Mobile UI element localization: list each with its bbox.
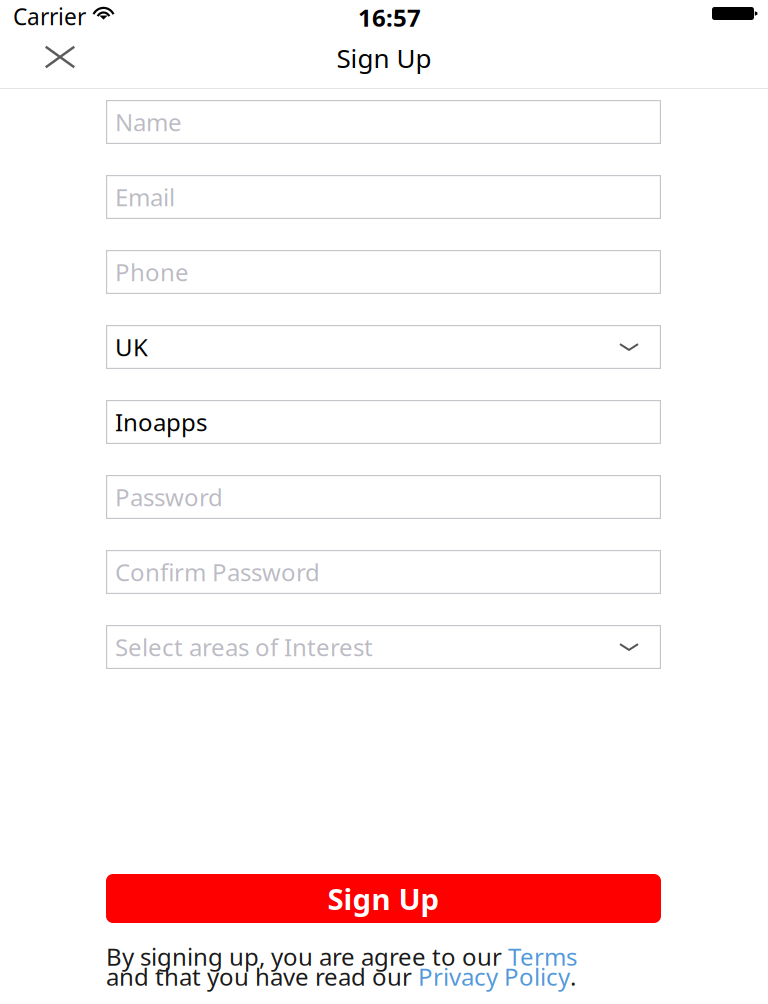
staticText: Carrier — [13, 1, 86, 32]
staticText: Password — [115, 481, 223, 513]
staticText: 16:57 — [358, 1, 421, 34]
staticText: and that you have read our — [106, 960, 418, 993]
button[interactable]: UK — [106, 325, 661, 369]
button[interactable]: Privacy Policy — [418, 960, 570, 993]
button[interactable]: Confirm Password — [106, 550, 661, 594]
staticText: Inoapps — [115, 406, 207, 438]
button[interactable]: Name — [106, 100, 661, 144]
staticText: Terms — [508, 940, 577, 973]
button[interactable]: Password — [106, 475, 661, 519]
staticText: Name — [115, 106, 182, 138]
button[interactable]: Inoapps — [106, 400, 661, 444]
button[interactable]: Email — [106, 175, 661, 219]
staticText: Sign Up — [327, 878, 439, 918]
staticText: UK — [115, 331, 148, 363]
button[interactable]: Close — [29, 31, 91, 83]
staticText: Select areas of Interest — [115, 631, 373, 663]
staticText: . — [570, 960, 576, 993]
button[interactable]: Sign Up — [106, 874, 661, 923]
button[interactable]: Select areas of Interest — [106, 625, 661, 669]
button[interactable]: Terms — [508, 940, 577, 973]
staticText: Confirm Password — [115, 556, 320, 588]
staticText: Privacy Policy — [418, 960, 570, 993]
staticText: Email — [115, 181, 175, 213]
button[interactable]: Phone — [106, 250, 661, 294]
staticText: By signing up, you are agree to our — [106, 940, 508, 973]
staticText: Phone — [115, 256, 189, 288]
staticText: Sign Up — [336, 40, 431, 76]
